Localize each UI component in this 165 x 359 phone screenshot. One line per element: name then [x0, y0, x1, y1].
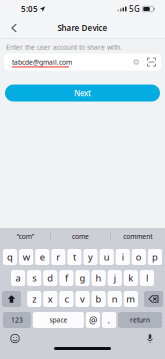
staticText: @ — [89, 314, 97, 326]
button[interactable]: j — [108, 270, 122, 286]
staticText: r — [56, 251, 60, 263]
button[interactable]: t — [67, 249, 81, 265]
button[interactable]: q — [3, 249, 17, 265]
staticText: d — [47, 272, 53, 284]
button[interactable]: Dictation — [140, 333, 160, 344]
button[interactable]: d — [43, 270, 57, 286]
button[interactable]: Back — [4, 18, 24, 38]
button[interactable]: m — [124, 291, 138, 307]
button[interactable]: Delete — [144, 291, 163, 307]
button[interactable]: k — [124, 270, 138, 286]
staticText: l — [146, 272, 148, 284]
button[interactable]: g — [75, 270, 90, 286]
staticText: come — [72, 232, 89, 241]
staticText: e — [40, 251, 45, 263]
staticText: tabcde@gmail.com — [12, 58, 72, 66]
staticText: p — [152, 251, 158, 263]
staticText: . — [107, 314, 110, 326]
button[interactable]: c — [59, 291, 73, 307]
staticText: x — [48, 293, 53, 305]
button[interactable]: space — [33, 312, 84, 328]
staticText: Enter the user account to share with. — [6, 43, 122, 52]
button[interactable]: Emoji — [5, 333, 25, 344]
staticText: “com” — [17, 232, 34, 241]
staticText: i — [122, 251, 124, 263]
staticText: n — [112, 293, 118, 305]
staticText: comment — [123, 232, 152, 241]
staticText: t — [73, 251, 76, 263]
button[interactable]: Scan code — [147, 58, 156, 67]
staticText: z — [32, 293, 36, 305]
staticText: s — [32, 272, 36, 284]
button[interactable]: p — [148, 249, 162, 265]
button[interactable]: z — [27, 291, 41, 307]
staticText: 5G — [129, 4, 140, 14]
button[interactable]: “com” — [0, 228, 50, 244]
button[interactable]: x — [43, 291, 57, 307]
button[interactable]: h — [91, 270, 106, 286]
staticText: y — [88, 251, 93, 263]
button[interactable]: u — [99, 249, 114, 265]
button[interactable]: come — [51, 228, 110, 244]
staticText: u — [104, 251, 110, 263]
staticText: k — [128, 272, 133, 284]
button[interactable]: r — [51, 249, 65, 265]
staticText: g — [79, 272, 85, 284]
button[interactable]: Shift — [2, 291, 21, 307]
button[interactable]: return — [118, 312, 162, 328]
button[interactable]: f — [59, 270, 73, 286]
staticText: a — [16, 272, 21, 284]
staticText: 123 — [11, 316, 23, 324]
staticText: w — [23, 251, 30, 263]
staticText: 5:05 — [21, 4, 38, 14]
button[interactable]: Clear text — [133, 59, 139, 65]
button[interactable]: e — [35, 249, 49, 265]
button[interactable]: w — [19, 249, 33, 265]
staticText: h — [96, 272, 102, 284]
staticText: space — [49, 316, 67, 324]
button[interactable]: n — [108, 291, 122, 307]
staticText: q — [7, 251, 13, 263]
button[interactable]: Next — [5, 85, 160, 102]
button[interactable]: l — [140, 270, 154, 286]
button[interactable]: a — [11, 270, 25, 286]
button[interactable]: o — [132, 249, 146, 265]
button[interactable]: @ — [86, 312, 100, 328]
button[interactable]: v — [75, 291, 90, 307]
staticText: o — [136, 251, 142, 263]
staticText: Next — [74, 88, 91, 98]
staticText: v — [80, 293, 85, 305]
staticText: c — [64, 293, 68, 305]
staticText: b — [96, 293, 102, 305]
button[interactable]: 123 — [3, 312, 31, 328]
button[interactable]: s — [27, 270, 41, 286]
button[interactable]: y — [83, 249, 98, 265]
button[interactable]: comment — [111, 228, 165, 244]
staticText: Share Device — [57, 23, 107, 33]
button[interactable]: . — [102, 312, 116, 328]
button[interactable]: b — [91, 291, 106, 307]
staticText: m — [126, 293, 135, 305]
staticText: f — [65, 272, 68, 284]
button[interactable]: i — [116, 249, 130, 265]
staticText: j — [114, 272, 116, 284]
staticText: return — [130, 316, 150, 324]
